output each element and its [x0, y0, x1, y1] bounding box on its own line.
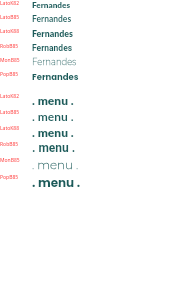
staticText: PopB85	[0, 174, 32, 181]
staticText: Fernandes	[32, 57, 77, 67]
staticText: Fernandes	[32, 43, 73, 53]
staticText: MonB85	[0, 57, 32, 64]
staticText: PopB85	[0, 71, 32, 78]
staticText: RobB85	[0, 43, 32, 50]
staticText: . menu .	[32, 141, 76, 155]
staticText: Fernandes	[32, 28, 73, 39]
staticText: LatoK82	[0, 0, 32, 7]
staticText: Fernandes	[32, 71, 79, 83]
staticText: . menu .	[32, 125, 74, 139]
staticText: LatoK88	[0, 28, 32, 35]
staticText: Fernandes	[32, 14, 72, 24]
staticText: . menu .	[32, 93, 74, 107]
staticText: LatoB85	[0, 109, 32, 116]
staticText: LatoK82	[0, 93, 32, 100]
staticText: . menu .	[32, 109, 74, 123]
staticText: RobB85	[0, 141, 32, 148]
staticText: LatoB85	[0, 14, 32, 21]
staticText: Fernandes	[32, 0, 71, 10]
staticText: LatoK88	[0, 125, 32, 132]
staticText: . menu .	[32, 174, 81, 191]
staticText: MonB85	[0, 157, 32, 164]
staticText: . menu .	[32, 157, 79, 172]
